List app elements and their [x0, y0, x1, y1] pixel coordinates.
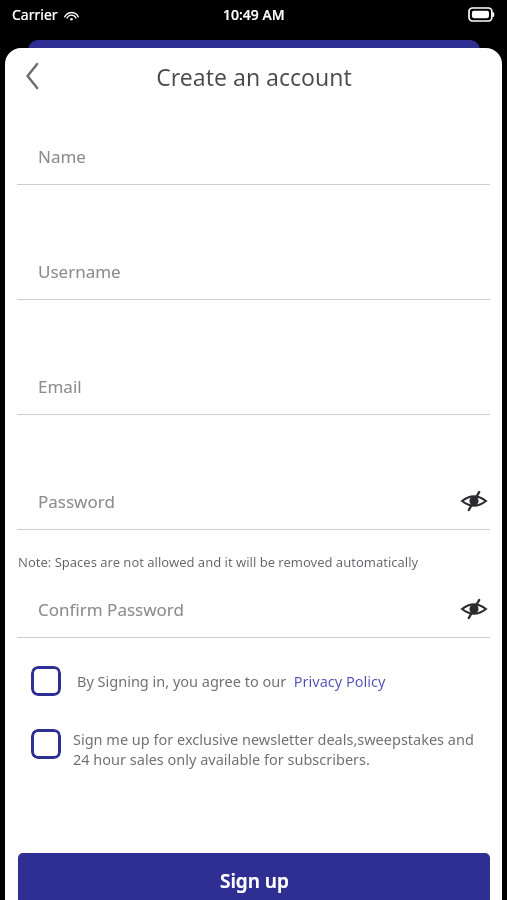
button[interactable]: Password — [5, 473, 502, 529]
staticText: Email — [38, 375, 82, 398]
staticText: Sign up — [220, 868, 289, 894]
staticText: Carrier — [12, 5, 58, 24]
staticText: Password — [38, 490, 115, 513]
staticText: Name — [38, 145, 86, 168]
button[interactable]: Privacy Policy — [290, 671, 386, 691]
staticText: Confirm Password — [38, 598, 184, 621]
button[interactable]: Sign up — [18, 853, 490, 900]
staticText: Sign me up for exclusive newsletter deal… — [73, 729, 480, 770]
button[interactable]: Toggle password visibility — [454, 481, 494, 521]
staticText: By Signing in, you agree to our — [77, 671, 290, 691]
button[interactable]: Back — [10, 54, 54, 98]
button[interactable]: Checkbox — [31, 666, 488, 696]
staticText: Username — [38, 260, 121, 283]
button[interactable]: Confirm Password — [5, 581, 502, 637]
staticText: 10:49 AM — [223, 5, 285, 24]
button[interactable]: Toggle password visibility — [454, 589, 494, 629]
button[interactable]: Checkbox — [31, 729, 480, 770]
button[interactable]: Username — [5, 243, 502, 299]
button[interactable]: Name — [5, 128, 502, 184]
staticText: Create an account — [156, 61, 352, 92]
button[interactable]: Checkbox — [31, 666, 61, 696]
button[interactable]: Checkbox — [31, 729, 61, 759]
button[interactable]: Email — [5, 358, 502, 414]
staticText: Note: Spaces are not allowed and it will… — [18, 553, 419, 571]
